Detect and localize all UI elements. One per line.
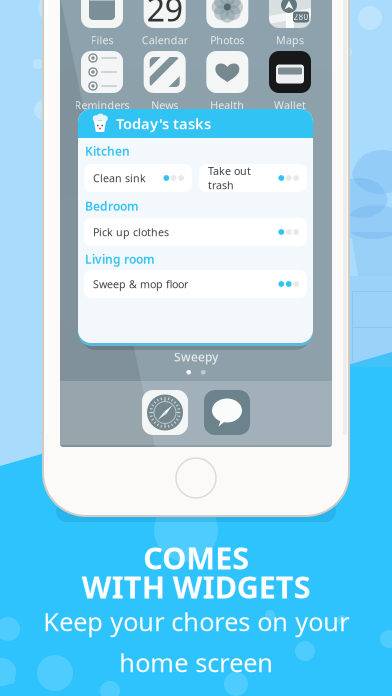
staticText: Pick up clothes — [93, 225, 169, 239]
button[interactable]: Sweep & mop floor — [84, 270, 307, 298]
button[interactable]: Messages — [204, 390, 250, 435]
staticText: Bedroom — [85, 198, 139, 214]
staticText: trash — [208, 178, 234, 192]
staticText: Calendar — [142, 33, 188, 47]
staticText: Keep your chores on your — [43, 605, 349, 638]
staticText: Today's tasks — [116, 114, 211, 133]
button[interactable]: Clean sink — [84, 164, 192, 192]
staticText: Sweep & mop floor — [93, 277, 188, 291]
staticText: home screen — [119, 646, 273, 679]
staticText: WITH WIDGETS — [81, 566, 310, 607]
staticText: Reminders — [74, 98, 129, 112]
staticText: Take out — [208, 164, 251, 178]
staticText: 29 — [147, 0, 183, 30]
staticText: Living room — [85, 251, 155, 267]
staticText: 280 — [293, 12, 308, 22]
button[interactable]: Safari — [142, 390, 188, 435]
staticText: Kitchen — [85, 143, 130, 159]
staticText: News — [151, 98, 178, 112]
staticText: Health — [210, 98, 244, 112]
staticText: Clean sink — [93, 171, 146, 185]
staticText: Maps — [276, 33, 304, 47]
staticText: Sweepy — [174, 349, 218, 365]
staticText: Wallet — [274, 98, 306, 112]
staticText: Photos — [210, 33, 244, 47]
staticText: Files — [90, 33, 113, 47]
button[interactable]: Take out — [199, 164, 307, 192]
staticText: COMES — [143, 537, 249, 578]
button[interactable]: Pick up clothes — [84, 218, 307, 246]
